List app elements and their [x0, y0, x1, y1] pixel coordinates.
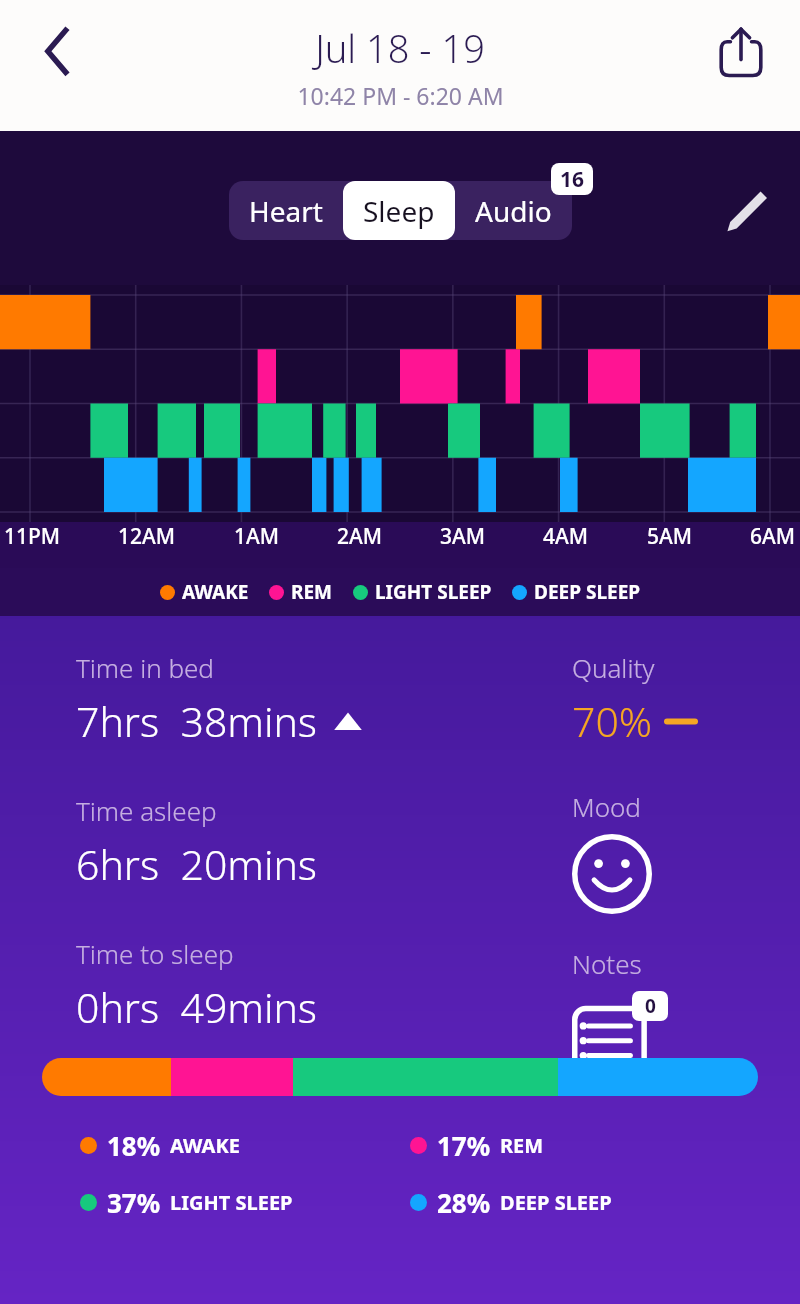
- staticText: REM: [500, 1132, 544, 1159]
- staticText: Heart: [249, 192, 323, 230]
- staticText: AWAKE: [182, 579, 249, 605]
- staticText: 7hrs 38mins: [76, 693, 317, 749]
- button[interactable]: Back: [22, 18, 86, 82]
- button[interactable]: Edit: [712, 178, 776, 242]
- staticText: DEEP SLEEP: [500, 1189, 612, 1216]
- button[interactable]: Share: [708, 20, 774, 86]
- staticText: 18%: [107, 1128, 161, 1163]
- staticText: 0hrs 49mins: [76, 979, 317, 1035]
- button[interactable]: Notes: [572, 991, 668, 1073]
- staticText: Notes: [572, 946, 642, 981]
- staticText: 3AM: [440, 522, 486, 551]
- staticText: Time to sleep: [76, 936, 234, 971]
- button[interactable]: Mood: [572, 834, 652, 914]
- staticText: Time asleep: [76, 793, 217, 828]
- staticText: 70%: [572, 693, 653, 749]
- staticText: Sleep: [363, 192, 435, 230]
- staticText: 6AM: [750, 522, 796, 551]
- button[interactable]: Sleep: [343, 181, 455, 240]
- button[interactable]: Heart: [229, 181, 343, 240]
- staticText: 4AM: [543, 522, 589, 551]
- staticText: 2AM: [337, 522, 383, 551]
- staticText: 11PM: [4, 522, 61, 551]
- staticText: Mood: [572, 789, 641, 824]
- staticText: DEEP SLEEP: [534, 579, 641, 605]
- staticText: 17%: [437, 1128, 491, 1163]
- button[interactable]: Audio: [455, 181, 572, 240]
- staticText: Time in bed: [76, 650, 214, 685]
- staticText: Quality: [572, 650, 655, 685]
- staticText: 12AM: [118, 522, 176, 551]
- staticText: 16: [560, 165, 585, 194]
- staticText: REM: [291, 579, 333, 605]
- staticText: Jul 18 - 19: [315, 22, 485, 74]
- staticText: 0: [645, 993, 656, 1019]
- staticText: 1AM: [234, 522, 280, 551]
- staticText: LIGHT SLEEP: [375, 579, 492, 605]
- staticText: 6hrs 20mins: [76, 836, 317, 892]
- staticText: 37%: [107, 1185, 161, 1220]
- staticText: 28%: [437, 1185, 491, 1220]
- staticText: LIGHT SLEEP: [170, 1189, 293, 1216]
- staticText: AWAKE: [170, 1132, 240, 1159]
- staticText: 10:42 PM - 6:20 AM: [297, 80, 504, 111]
- staticText: 5AM: [647, 522, 693, 551]
- staticText: Audio: [475, 192, 552, 230]
